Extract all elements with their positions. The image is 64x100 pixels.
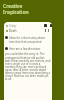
staticText: Here are a few directions bbox=[9, 47, 41, 51]
button[interactable]: Draft bbox=[6, 29, 17, 33]
button[interactable]: More options bbox=[50, 24, 52, 27]
button[interactable]: Share bbox=[44, 24, 47, 27]
staticText: Ideas for a short story about time that … bbox=[9, 36, 51, 43]
staticText: Today bbox=[9, 24, 17, 28]
staticText: you could take the story in. The protago… bbox=[5, 52, 51, 80]
staticText: Draft bbox=[9, 29, 17, 33]
staticText: Creative Inspiration bbox=[3, 3, 29, 16]
